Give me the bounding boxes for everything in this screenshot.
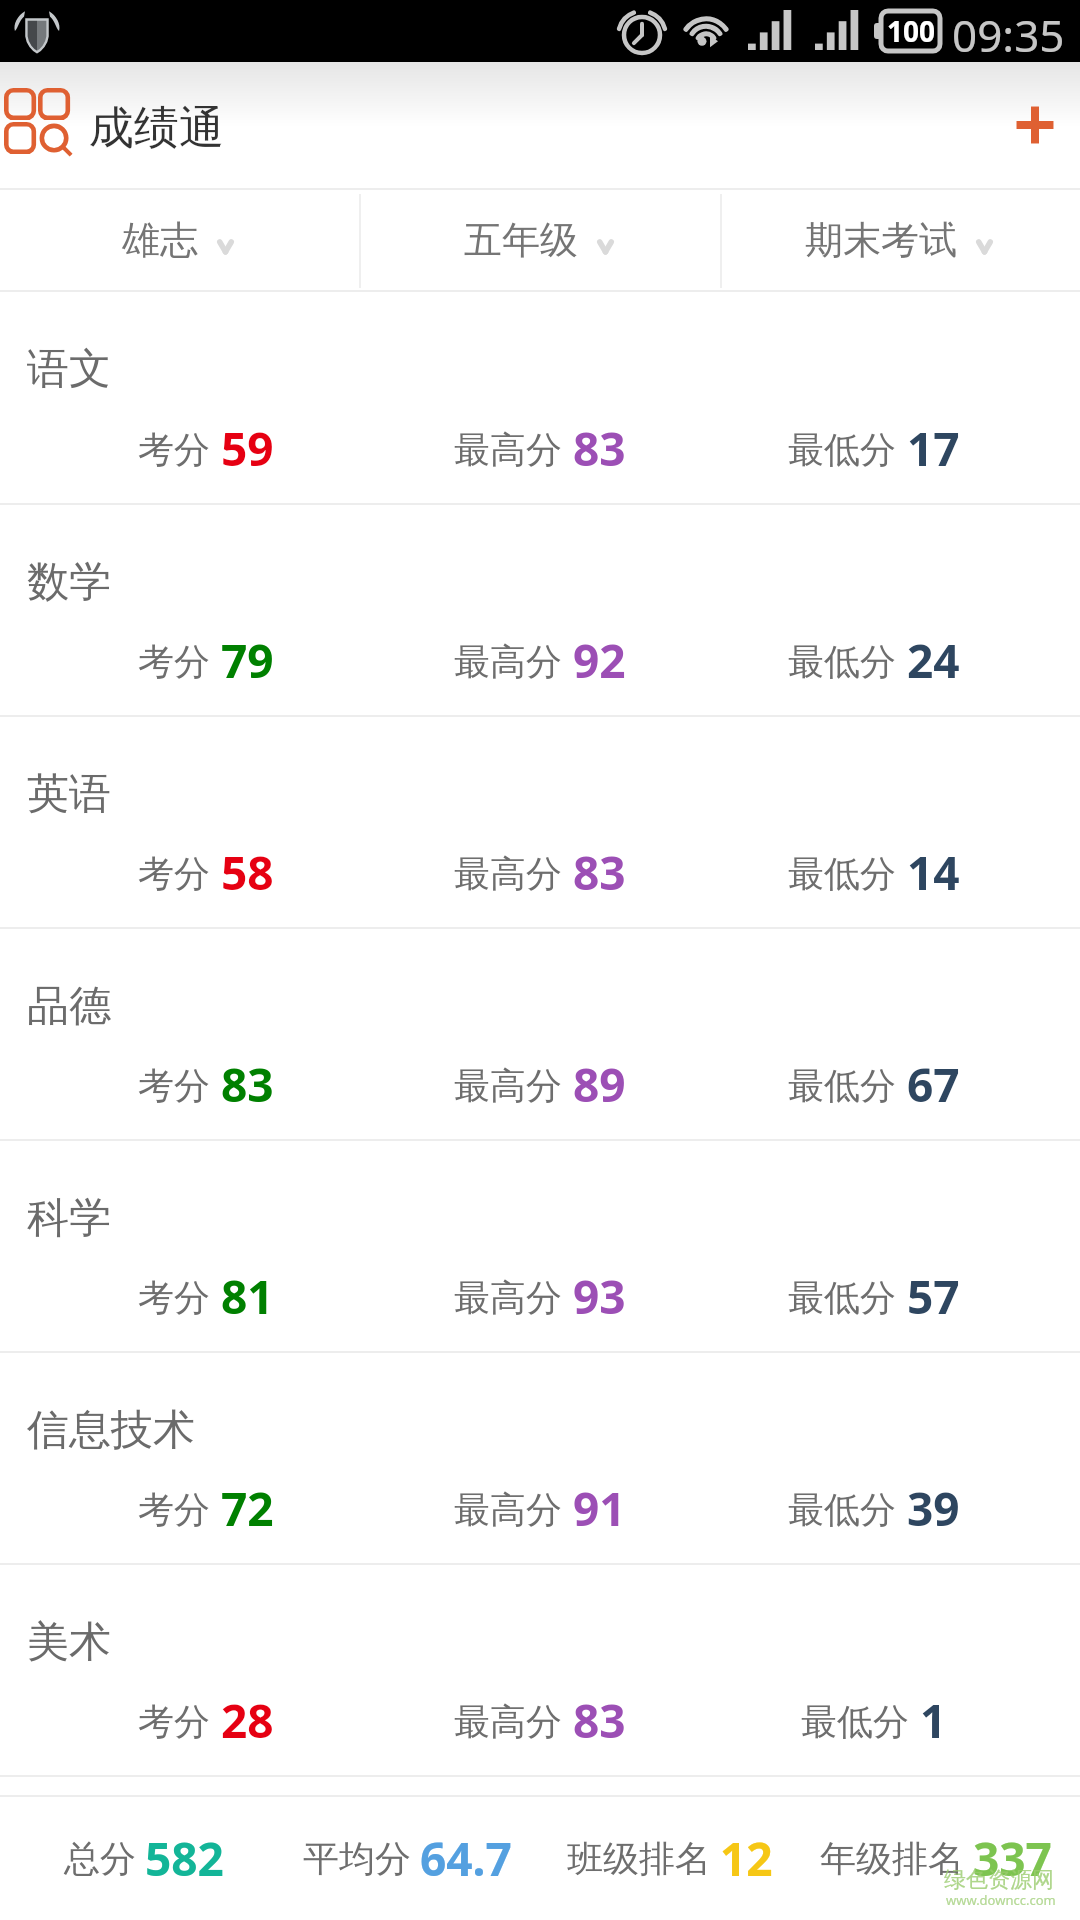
staticText: 79 [221,629,274,692]
button[interactable]: 信息技术 [0,1353,1080,1563]
button[interactable]: 五年级 [361,190,720,290]
staticText: 28 [221,1689,274,1752]
staticText: 67 [907,1053,960,1116]
staticText: 83 [221,1053,274,1116]
staticText: 平均分 [303,1836,411,1881]
staticText: 83 [573,841,626,904]
staticText: 最低分 [788,639,896,684]
staticText: 雄志 [122,216,198,264]
staticText: 最高分 [454,1487,562,1532]
staticText: 92 [573,629,626,692]
button[interactable]: Add [990,80,1080,170]
button[interactable]: 数学 [0,505,1080,715]
staticText: 最低分 [801,1699,909,1744]
button[interactable]: 英语 [0,717,1080,927]
staticText: 总分 [64,1836,136,1881]
staticText: 最低分 [788,1275,896,1320]
staticText: 最高分 [454,427,562,472]
staticText: 72 [221,1477,274,1540]
staticText: 最高分 [454,1699,562,1744]
staticText: 93 [573,1265,626,1328]
staticText: 39 [907,1477,960,1540]
staticText: 考分 [138,427,210,472]
staticText: 57 [907,1265,960,1328]
button[interactable]: 雄志 [0,190,359,290]
staticText: 81 [221,1265,274,1328]
staticText: 最低分 [788,1063,896,1108]
staticText: 最高分 [454,851,562,896]
button[interactable]: 期末考试 [722,190,1080,290]
staticText: 64.7 [420,1827,512,1890]
staticText: 89 [573,1053,626,1116]
staticText: 期末考试 [805,216,957,264]
staticText: 59 [221,417,274,480]
staticText: 1 [920,1689,947,1752]
button[interactable]: 成绩通 [4,88,224,158]
staticText: 17 [907,417,960,480]
staticText: 14 [907,841,960,904]
button[interactable]: 品德 [0,929,1080,1139]
staticText: 品德 [27,980,111,1033]
staticText: 最低分 [788,1487,896,1532]
staticText: 100 [887,12,936,50]
staticText: 绿色资源网 [944,1866,1054,1894]
staticText: 数学 [27,556,111,609]
staticText: 五年级 [464,216,578,264]
staticText: 91 [573,1477,626,1540]
button[interactable]: 科学 [0,1141,1080,1351]
staticText: 考分 [138,1487,210,1532]
staticText: 考分 [138,1063,210,1108]
staticText: 考分 [138,639,210,684]
staticText: 科学 [27,1192,111,1245]
staticText: 年级排名 [820,1836,964,1881]
staticText: 最低分 [788,851,896,896]
staticText: 最高分 [454,639,562,684]
staticText: 337 [973,1827,1052,1890]
staticText: 09:35 [952,5,1065,65]
staticText: 语文 [27,343,111,396]
staticText: www.downcc.com [946,1891,1056,1909]
staticText: 最高分 [454,1063,562,1108]
staticText: 83 [573,417,626,480]
staticText: 英语 [27,768,111,821]
staticText: 考分 [138,1699,210,1744]
staticText: 58 [221,841,274,904]
staticText: 最低分 [788,427,896,472]
staticText: 班级排名 [567,1836,711,1881]
staticText: 83 [573,1689,626,1752]
staticText: 考分 [138,1275,210,1320]
staticText: 最高分 [454,1275,562,1320]
staticText: 考分 [138,851,210,896]
button[interactable]: 美术 [0,1565,1080,1775]
staticText: 24 [907,629,960,692]
staticText: 582 [145,1827,224,1890]
staticText: 12 [720,1827,773,1890]
staticText: 信息技术 [27,1404,195,1457]
staticText: 美术 [27,1616,111,1669]
staticText: 成绩通 [89,100,224,157]
button[interactable]: 语文 [0,292,1080,503]
